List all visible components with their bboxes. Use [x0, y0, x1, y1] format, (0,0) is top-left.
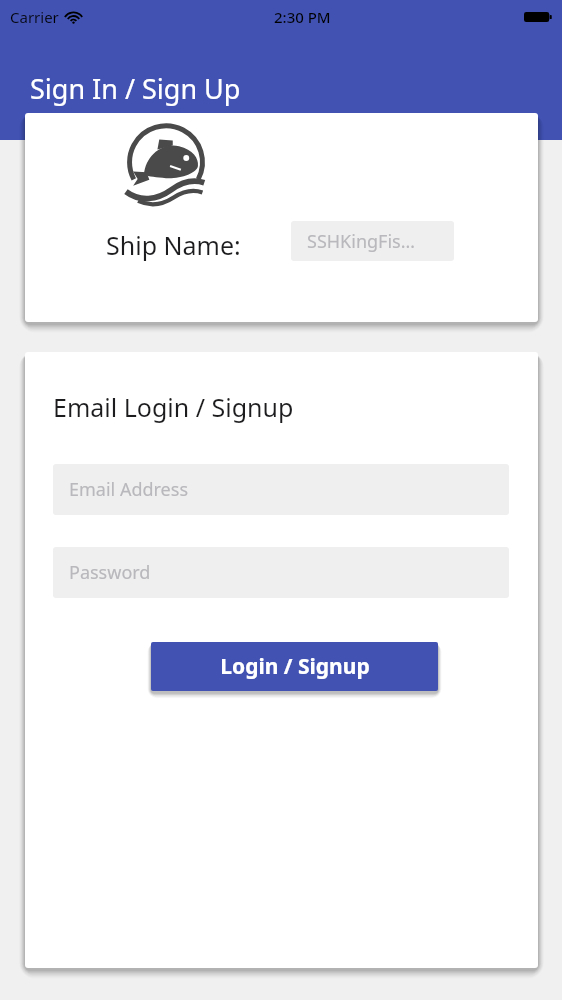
staticText: SSHKingFis… [307, 229, 415, 254]
button[interactable]: Login / Signup [151, 642, 438, 691]
staticText: Sign In / Sign Up [30, 70, 241, 107]
staticText: Login / Signup [220, 652, 370, 681]
staticText: Carrier [10, 7, 59, 27]
staticText: 2:30 PM [274, 7, 331, 27]
staticText: Ship Name: [106, 228, 241, 262]
button[interactable]: SSHKingFis… [291, 221, 454, 261]
button[interactable]: Email Address [53, 464, 509, 515]
button[interactable]: Password [53, 547, 509, 598]
staticText: Email Address [69, 477, 189, 502]
staticText: Email Login / Signup [53, 390, 294, 424]
staticText: Password [69, 560, 151, 585]
